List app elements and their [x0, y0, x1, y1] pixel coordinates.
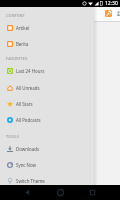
staticText: CONTENT: [6, 13, 25, 18]
button[interactable]: All Podcasts: [0, 112, 94, 128]
button[interactable]: Berita: [0, 36, 94, 52]
button[interactable]: Switch Theme: [0, 173, 94, 189]
button[interactable]: Sync Now: [0, 157, 94, 173]
button[interactable]: Back: [22, 187, 33, 198]
button[interactable]: Feeds: [105, 10, 112, 17]
button[interactable]: Downloads: [0, 141, 94, 157]
staticText: All Unreads: [16, 85, 40, 91]
staticText: Downloads: [16, 146, 39, 152]
staticText: TOOLS: [6, 134, 20, 139]
button[interactable]: All Stars: [0, 96, 94, 112]
staticText: All Podcasts: [16, 117, 41, 123]
button[interactable]: All Unreads: [0, 80, 94, 96]
button[interactable]: Account: [116, 11, 120, 16]
staticText: Berita: [16, 41, 29, 47]
button[interactable]: Last 24 Hours: [0, 63, 94, 79]
staticText: Sync Now: [16, 162, 36, 168]
button[interactable]: Artikel: [0, 20, 94, 36]
button[interactable]: Recents: [87, 187, 98, 198]
staticText: 12:30: [105, 0, 118, 7]
staticText: Artikel: [16, 25, 30, 31]
button[interactable]: Home: [55, 187, 66, 198]
staticText: FAVORITES: [6, 56, 28, 61]
staticText: Last 24 Hours: [16, 68, 45, 74]
staticText: All Stars: [16, 101, 33, 107]
staticText: Switch Theme: [16, 178, 45, 184]
